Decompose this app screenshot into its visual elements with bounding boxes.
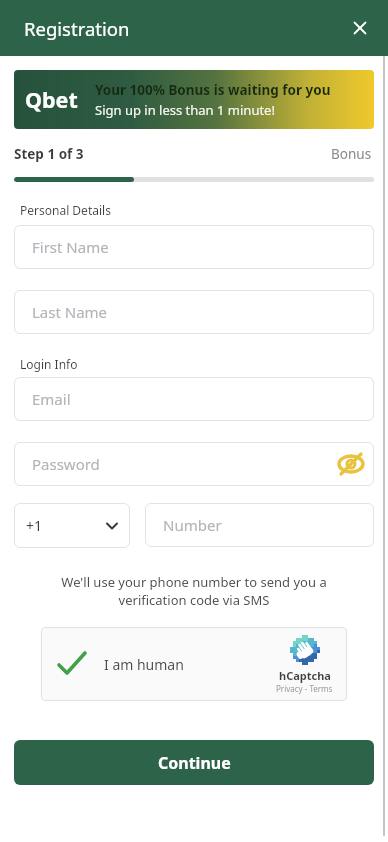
button[interactable] (346, 14, 374, 42)
staticText: +1 (26, 516, 43, 535)
staticText: I am human (104, 655, 184, 674)
button[interactable]: First Name (14, 225, 374, 269)
button[interactable]: Bonus (331, 145, 372, 163)
staticText: Last Name (32, 302, 108, 322)
button[interactable]: Last Name (14, 290, 374, 334)
staticText: Login Info (20, 356, 78, 372)
staticText: Qbet (25, 85, 78, 114)
staticText: Personal Details (20, 202, 111, 218)
staticText: Password (32, 454, 100, 474)
button[interactable]: I am human (41, 627, 347, 701)
button[interactable]: Qbet (14, 70, 374, 129)
staticText: Your 100% Bonus is waiting for you (95, 81, 331, 99)
staticText: hCaptcha (279, 668, 331, 683)
staticText: Sign up in less than 1 minute! (95, 101, 275, 119)
button[interactable]: Password (14, 442, 374, 486)
button[interactable]: +1 (14, 503, 130, 548)
staticText: Step 1 of 3 (14, 145, 84, 163)
staticText: Continue (158, 752, 231, 774)
button[interactable]: Email (14, 377, 374, 421)
staticText: First Name (32, 237, 109, 257)
button[interactable]: Continue (14, 740, 374, 785)
staticText: We'll use your phone number to send you … (0, 573, 388, 609)
staticText: Registration (24, 16, 130, 41)
staticText: Privacy - Terms (276, 683, 333, 694)
staticText: Number (163, 515, 222, 535)
staticText: Email (32, 389, 71, 409)
button[interactable]: Number (145, 503, 374, 547)
